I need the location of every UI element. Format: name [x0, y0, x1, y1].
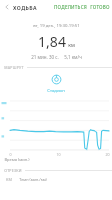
staticText: вт, 19 дек., 19:30-19:51: [33, 22, 80, 28]
staticText: Темп (мин./км): [19, 177, 47, 182]
staticText: ОТРЕЗКИ: [4, 168, 22, 173]
staticText: 0: [9, 152, 12, 157]
button[interactable]: ПОДЕЛИТЬСЯ: [52, 0, 89, 14]
button[interactable]: ГОТОВО: [89, 0, 112, 14]
staticText: км: [68, 42, 75, 49]
other: Маршрут: [51, 74, 62, 85]
button[interactable]: Маршрут: [0, 74, 112, 93]
staticText: 5,1 км/ч: [64, 54, 82, 60]
staticText: Время (мин.): [4, 157, 30, 162]
staticText: Стадион: [47, 87, 65, 93]
staticText: КМ: [6, 177, 12, 182]
staticText: ГОТОВО: [90, 4, 110, 10]
button[interactable]: ХОДЬБА: [13, 0, 37, 14]
button[interactable]: КМ: [0, 177, 112, 182]
staticText: 20: [105, 152, 110, 157]
staticText: ПОДЕЛИТЬСЯ: [54, 4, 87, 10]
staticText: 10: [56, 152, 61, 157]
staticText: 21 мин. 30 с.: [31, 54, 59, 60]
staticText: ХОДЬБА: [13, 4, 37, 11]
staticText: МАРШРУТ: [4, 65, 24, 70]
staticText: 1,84: [38, 32, 66, 51]
button[interactable]: Назад: [0, 0, 13, 14]
